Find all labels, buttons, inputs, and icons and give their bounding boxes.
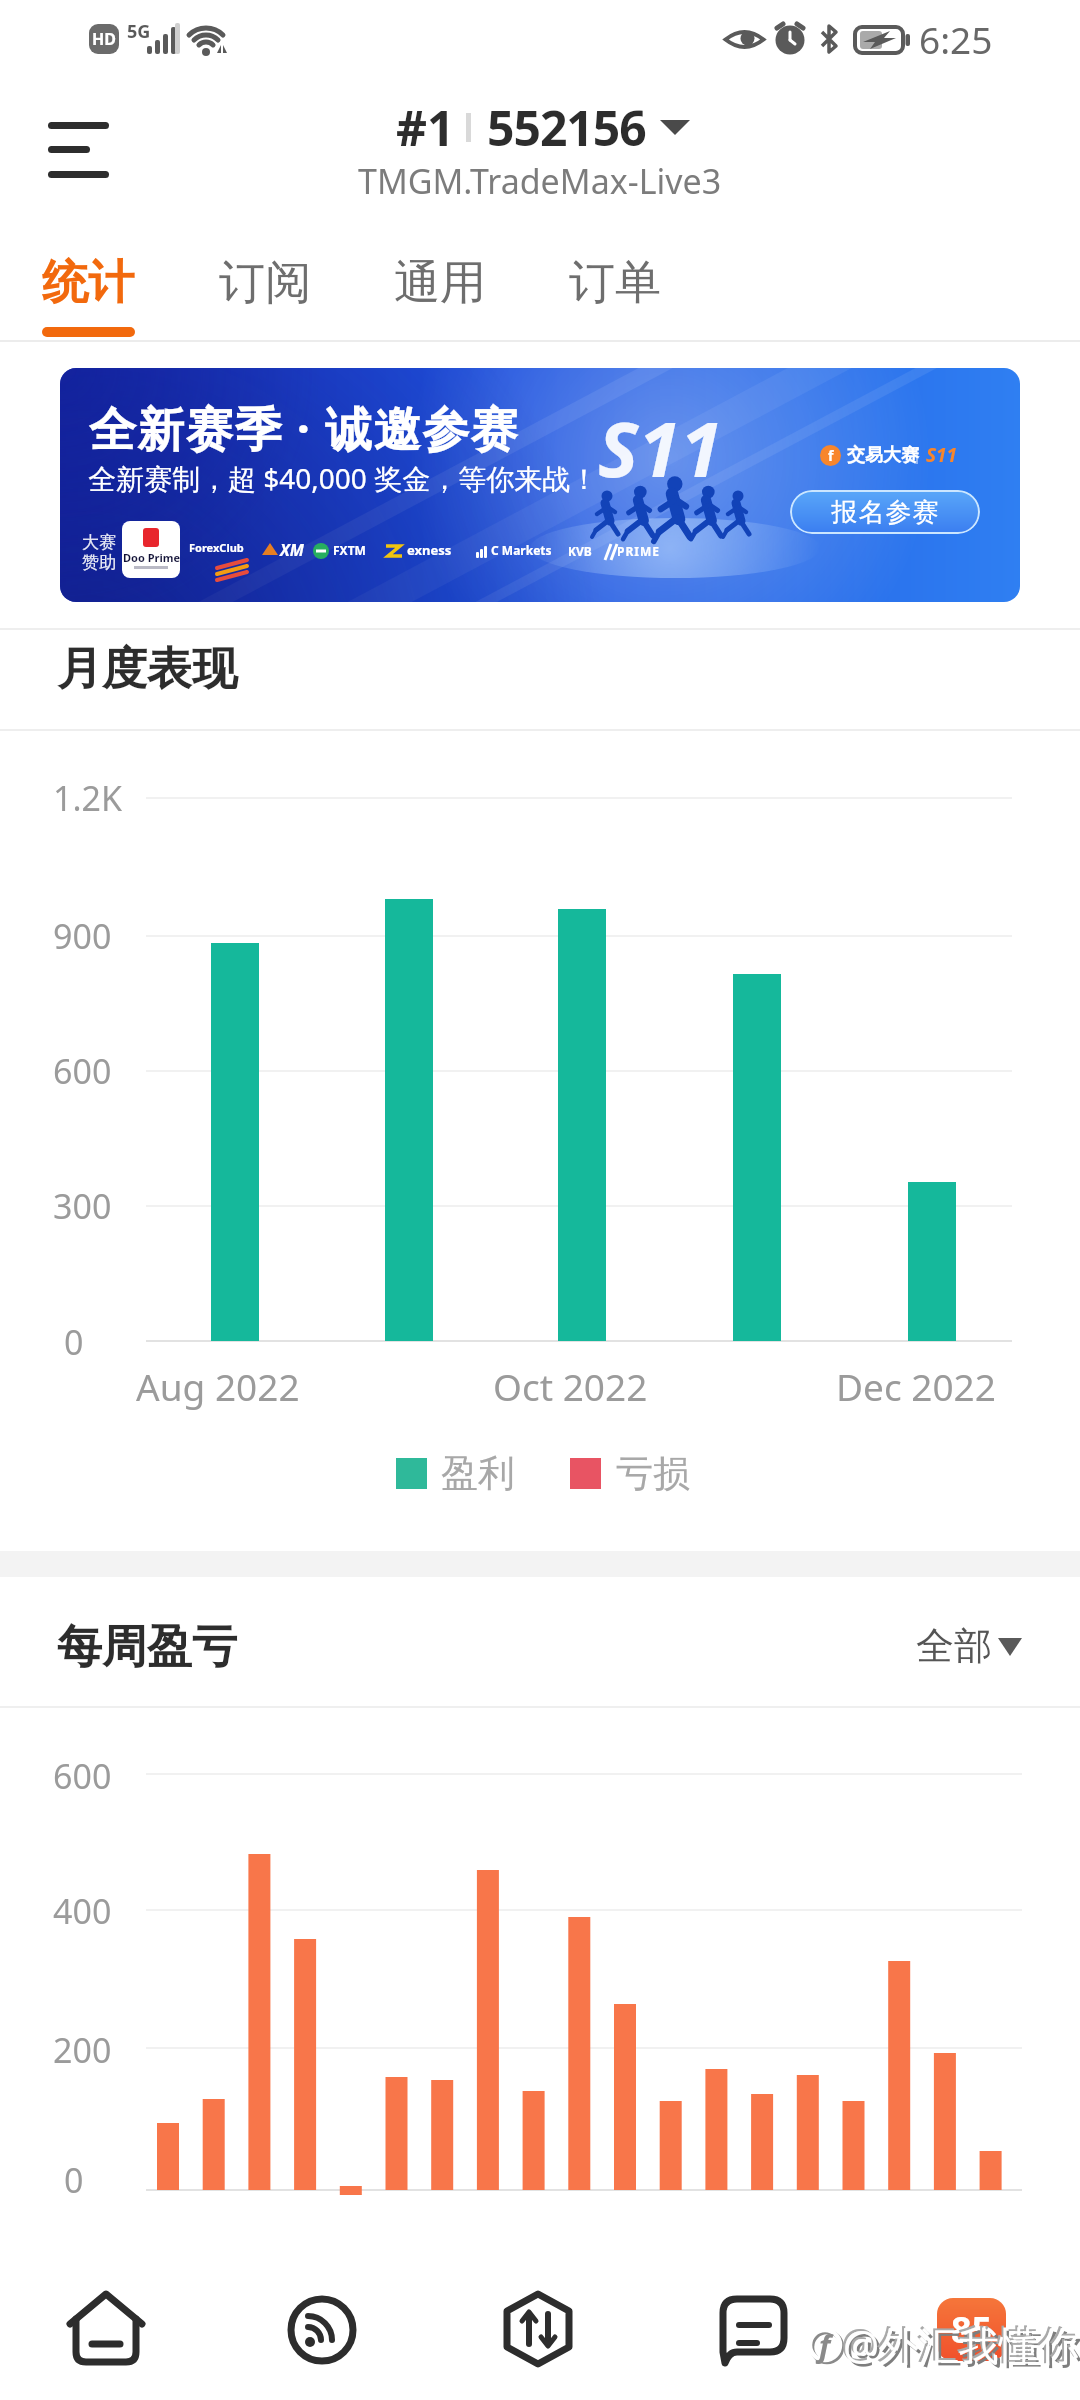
staticText: 亏损 [616,1450,690,1497]
staticText: ForexClub [189,540,244,555]
button[interactable]: 订单 [550,245,680,320]
staticText: FXTM [333,542,366,558]
button[interactable]: 通用 [375,245,505,320]
staticText: Aug 2022 [136,1361,300,1411]
staticText: PRIME [617,543,661,559]
staticText: C Markets [491,542,552,558]
button[interactable] [493,2284,583,2374]
staticText: 600 [53,1753,112,1799]
staticText: 0 [64,1319,84,1365]
staticText: 300 [53,1183,112,1229]
staticText: 85 [951,2305,993,2354]
staticText: 订阅 [219,254,311,312]
staticText: 6:25 [919,14,993,64]
staticText: 200 [53,2027,112,2073]
staticText: 报名参赛 [831,496,939,529]
staticText: 5G [127,19,151,44]
button[interactable] [710,2284,800,2374]
staticText: KVB [568,543,592,559]
staticText: 赞助 [82,552,116,573]
button[interactable] [277,2284,367,2374]
staticText: 0 [64,2157,84,2203]
staticText: Oct 2022 [493,1361,648,1411]
button[interactable]: 85 [937,2298,1006,2361]
staticText: #1 [396,95,455,160]
staticText: Doo Prime [123,550,180,565]
staticText: exness [407,541,452,559]
staticText: 每周盈亏 [57,1619,237,1676]
staticText: Dec 2022 [836,1361,996,1411]
staticText: 600 [53,1048,112,1094]
button[interactable] [61,2284,151,2374]
staticText: 552156 [487,95,646,160]
staticText: @外汇我懂你 [846,2320,1080,2375]
staticText: @外汇我懂你 [843,2317,1079,2372]
staticText: 订单 [569,254,661,312]
staticText: XM [280,539,304,561]
staticText: S11 [926,442,958,468]
staticText: @外汇我懂你 [841,2315,1077,2370]
staticText: f [819,2325,831,2366]
button[interactable] [38,110,128,190]
button[interactable]: 订阅 [200,245,330,320]
staticText: 盈利 [441,1450,515,1497]
staticText: 全新赛制，超 $40,000 奖金，等你来战！ [88,459,599,497]
button[interactable] [390,100,695,155]
staticText: 全新赛季 · 诚邀参赛 [89,396,520,460]
staticText: 通用 [394,254,486,312]
button[interactable]: 报名参赛 [790,490,980,534]
staticText: 全部 [916,1622,992,1670]
button[interactable] [880,1610,1050,1682]
staticText: 900 [53,913,112,959]
staticText: S11 [598,396,723,500]
staticText: TMGM.TradeMax-Live3 [358,158,722,204]
staticText: 400 [53,1888,112,1934]
staticText: 统计 [42,254,134,312]
button[interactable]: 统计 [23,245,153,320]
staticText: 交易大赛 [847,444,919,467]
staticText: 1.2K [53,775,123,821]
staticText: 大赛 [82,532,116,553]
staticText: 月度表现 [57,641,237,698]
staticText: f [828,446,834,465]
button[interactable]: 全新赛季 · 诚邀参赛 [60,368,1020,602]
staticText: HD [92,28,116,50]
